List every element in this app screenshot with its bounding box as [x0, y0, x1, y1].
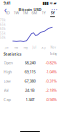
staticText: Open	[3, 60, 12, 65]
staticText: 24.1B	[25, 87, 35, 93]
button[interactable]: 1W	[12, 13, 21, 20]
staticText: Bitcoin USD	[18, 7, 41, 12]
staticText: Statistics	[3, 51, 21, 57]
staticText: Vol	[3, 87, 8, 93]
staticText: 1Y	[41, 10, 45, 15]
button[interactable]: 1Y	[39, 13, 48, 20]
staticText: 9:41	[3, 0, 10, 6]
staticText: Low	[3, 78, 10, 84]
staticText: Cap	[3, 97, 10, 102]
staticText: 6M	[31, 10, 37, 15]
button[interactable]: More	[51, 6, 57, 13]
staticText: 5Y	[50, 10, 54, 15]
button[interactable]: 1M	[21, 13, 30, 20]
staticText: 50k	[0, 36, 5, 39]
button[interactable]: 5Y	[48, 13, 57, 20]
button[interactable]: Cap	[0, 95, 60, 104]
staticText: ⋯	[51, 6, 58, 13]
staticText: ▮▮▮ ≋ ▰	[42, 1, 56, 5]
staticText: High	[3, 69, 11, 74]
staticText: 67,380	[24, 78, 35, 84]
staticText: 1D	[5, 10, 10, 15]
staticText: 1.34T	[25, 97, 34, 102]
staticText: 1M	[22, 10, 28, 15]
staticText: -0.94%	[45, 97, 56, 102]
staticText: Today	[49, 52, 56, 56]
staticText: 68,240	[24, 60, 35, 65]
button[interactable]: 1D	[3, 13, 12, 20]
staticText: ‹	[4, 3, 7, 16]
staticText: 1W	[13, 10, 19, 15]
staticText: -2.18%	[45, 87, 56, 93]
staticText: 55k	[0, 32, 5, 35]
staticText: -0.31%	[45, 78, 56, 84]
staticText: May	[23, 46, 27, 49]
button[interactable]: 6M	[30, 13, 39, 20]
staticText: 60k	[0, 27, 5, 31]
button[interactable]: High	[0, 67, 60, 76]
staticText: -1.04%	[45, 69, 56, 74]
staticText: Sep	[41, 46, 46, 49]
button[interactable]: Low	[0, 76, 60, 86]
button[interactable]: Back	[2, 6, 8, 13]
staticText: Jan	[5, 46, 9, 49]
staticText: Nov	[50, 46, 55, 49]
staticText: 70k	[0, 18, 5, 22]
button[interactable]: Vol	[0, 86, 60, 95]
staticText: -0.82%	[45, 60, 56, 65]
staticText: Mar	[14, 46, 18, 49]
staticText: 69,115	[24, 69, 35, 74]
staticText: 65k	[0, 23, 5, 26]
staticText: Jul	[33, 46, 37, 49]
button[interactable]: Open	[0, 58, 60, 67]
